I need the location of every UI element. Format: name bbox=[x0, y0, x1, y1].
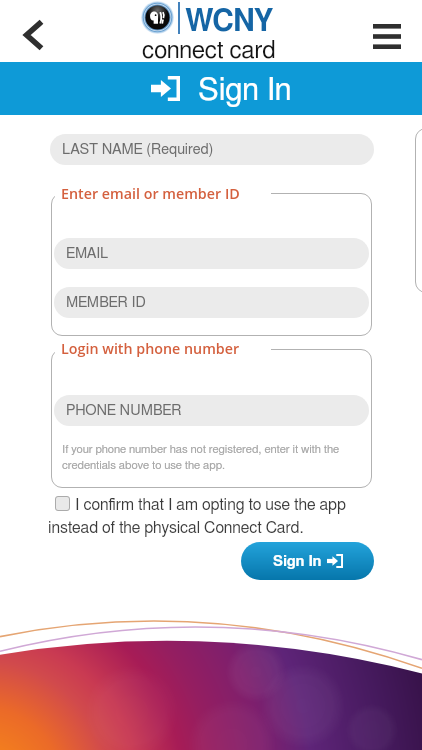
button[interactable]: Back bbox=[6, 6, 52, 64]
button[interactable]: Menu bbox=[363, 11, 411, 59]
staticText: PHONE NUMBER bbox=[66, 403, 182, 418]
staticText: If your phone number has not registered,… bbox=[62, 444, 346, 471]
staticText: instead of the physical Connect Card. bbox=[48, 520, 304, 536]
button[interactable]: EMAIL bbox=[54, 238, 369, 269]
button[interactable]: LAST NAME (Required) bbox=[50, 134, 374, 165]
staticText: Enter email or member ID bbox=[61, 184, 240, 203]
staticText: EMAIL bbox=[66, 246, 109, 261]
staticText: I confirm that I am opting to use the ap… bbox=[75, 497, 346, 513]
button[interactable]: PHONE NUMBER bbox=[54, 395, 369, 426]
staticText: Sign In bbox=[198, 75, 292, 106]
button[interactable]: Sign In bbox=[241, 542, 374, 580]
staticText: LAST NAME (Required) bbox=[62, 142, 214, 157]
button[interactable]: MEMBER ID bbox=[54, 287, 369, 318]
button[interactable]: Sign In bbox=[0, 62, 422, 115]
staticText: connect card bbox=[142, 39, 276, 63]
staticText: Sign In bbox=[273, 554, 322, 569]
staticText: Login with phone number bbox=[61, 339, 240, 358]
staticText: WCNY bbox=[185, 7, 274, 37]
button[interactable]: I confirm that I am opting to use the ap… bbox=[48, 493, 348, 539]
staticText: MEMBER ID bbox=[66, 295, 146, 310]
